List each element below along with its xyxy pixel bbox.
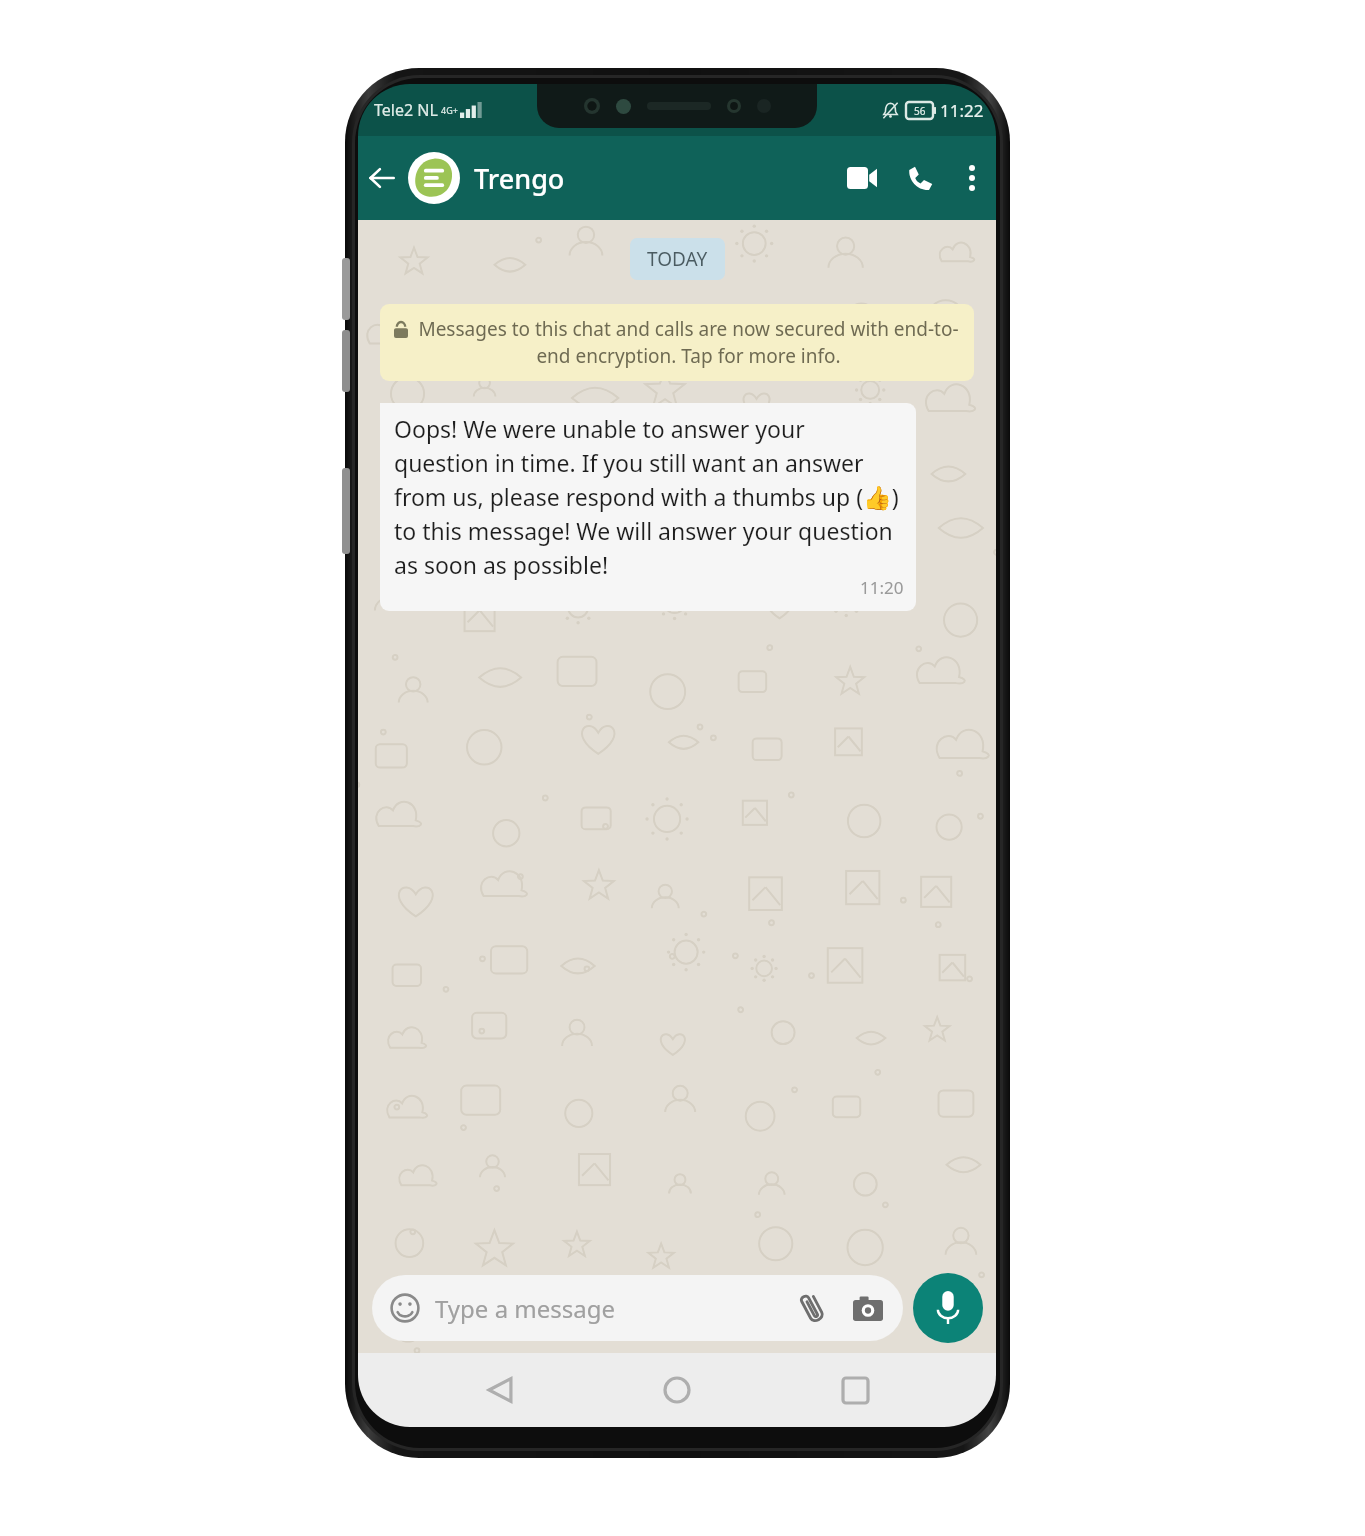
button[interactable]: Oops! We were unable to answer your ques… bbox=[380, 403, 916, 611]
staticText: Oops! We were unable to answer your ques… bbox=[394, 413, 904, 580]
button[interactable]: Emoji bbox=[372, 1275, 903, 1341]
staticText: Tele2 NL bbox=[374, 99, 438, 121]
button[interactable]: Back bbox=[358, 154, 406, 202]
staticText: Type a message bbox=[435, 1292, 787, 1325]
button[interactable]: Voice call bbox=[894, 152, 946, 204]
staticText: 4G+ bbox=[441, 104, 458, 116]
button[interactable]: Emoji bbox=[385, 1288, 425, 1328]
staticText: 11:22 bbox=[940, 99, 984, 122]
button[interactable]: TODAY bbox=[630, 238, 725, 280]
button[interactable]: Trengo profile bbox=[408, 152, 460, 204]
button[interactable]: Video call bbox=[836, 152, 888, 204]
button[interactable]: Trengo bbox=[474, 160, 836, 197]
button[interactable]: Messages to this chat and calls are now … bbox=[380, 304, 974, 381]
staticText: 56 bbox=[914, 104, 926, 118]
staticText: 11:20 bbox=[860, 576, 904, 599]
button[interactable]: More options bbox=[948, 154, 996, 202]
staticText: Messages to this chat and calls are now … bbox=[417, 316, 960, 369]
button[interactable]: Record voice message bbox=[913, 1273, 983, 1343]
button[interactable]: Back bbox=[464, 1354, 536, 1426]
button[interactable]: Home bbox=[641, 1354, 713, 1426]
button[interactable]: Recent apps bbox=[819, 1354, 891, 1426]
staticText: TODAY bbox=[647, 246, 708, 272]
button[interactable]: Camera bbox=[843, 1283, 893, 1333]
button[interactable]: Attach bbox=[787, 1283, 837, 1333]
